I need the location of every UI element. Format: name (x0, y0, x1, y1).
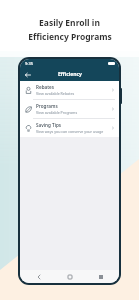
button[interactable]: Back (34, 272, 43, 281)
button[interactable]: Programs (20, 100, 119, 118)
staticText: Saving Tips (36, 122, 62, 128)
staticText: View ways you can conserve your usage (36, 129, 104, 134)
button[interactable]: Home (65, 272, 74, 281)
staticText: Programs (36, 103, 58, 109)
staticText: Rebates (36, 84, 55, 90)
button[interactable]: Rebates (20, 81, 119, 99)
staticText: View available Programs (36, 110, 78, 115)
staticText: Efficiency (58, 71, 82, 78)
staticText: View available Rebates (36, 91, 75, 96)
button[interactable]: Back (22, 69, 33, 80)
button[interactable]: Saving Tips (20, 119, 119, 137)
staticText: 9:35 (25, 61, 33, 66)
button[interactable]: Recent apps (96, 272, 105, 281)
staticText: Efficiency Programs (28, 31, 112, 43)
staticText: Easily Enroll in (39, 17, 100, 29)
